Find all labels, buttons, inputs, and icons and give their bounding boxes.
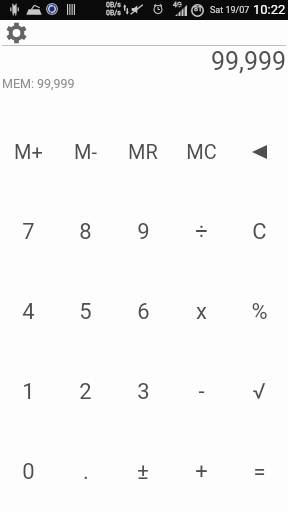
button[interactable]: 8 <box>57 192 114 272</box>
button[interactable]: ± <box>114 432 172 512</box>
staticText: - <box>198 379 205 405</box>
button[interactable]: 9 <box>114 192 172 272</box>
staticText: C <box>252 219 267 245</box>
button[interactable]: = <box>230 432 288 512</box>
button[interactable]: MR <box>114 111 172 192</box>
button[interactable]: √ <box>230 352 288 432</box>
button[interactable]: 6 <box>114 272 172 352</box>
staticText: MEM: 99,999 <box>2 76 75 91</box>
button[interactable]: 4 <box>0 272 57 352</box>
button[interactable]: - <box>172 352 230 432</box>
button[interactable]: % <box>230 272 288 352</box>
button[interactable]: ÷ <box>172 192 230 272</box>
staticText: 4 <box>22 299 35 325</box>
staticText: 7 <box>22 219 35 245</box>
staticText: 0 <box>22 459 35 485</box>
button[interactable]: x <box>172 272 230 352</box>
staticText: MR <box>128 140 158 163</box>
staticText: % <box>251 299 268 325</box>
staticText: 9 <box>137 219 150 245</box>
staticText: + <box>195 459 208 485</box>
button[interactable]: 7 <box>0 192 57 272</box>
staticText: 81 <box>194 5 202 13</box>
button[interactable]: MC <box>172 111 230 192</box>
staticText: 6 <box>137 299 150 325</box>
staticText: 3 <box>137 379 150 405</box>
button[interactable]: Backspace <box>230 111 288 192</box>
staticText: 10:22 <box>253 2 286 17</box>
button[interactable]: 1 <box>0 352 57 432</box>
staticText: 99,999 <box>211 47 287 76</box>
staticText: MC <box>186 140 217 163</box>
staticText: = <box>253 459 266 485</box>
button[interactable]: Settings <box>6 22 27 44</box>
staticText: M+ <box>14 140 43 163</box>
button[interactable]: M+ <box>0 111 57 192</box>
button[interactable]: C <box>230 192 288 272</box>
staticText: 2 <box>79 379 92 405</box>
button[interactable]: M- <box>57 111 114 192</box>
button[interactable]: . <box>57 432 114 512</box>
staticText: . <box>83 459 89 485</box>
staticText: 0B/s <box>106 9 121 17</box>
button[interactable]: 0 <box>0 432 57 512</box>
staticText: 5 <box>79 299 92 325</box>
staticText: √ <box>252 379 266 405</box>
staticText: 0B/s <box>106 1 121 9</box>
button[interactable]: 2 <box>57 352 114 432</box>
staticText: 8 <box>79 219 92 245</box>
staticText: 1 <box>22 379 35 405</box>
staticText: ± <box>137 459 149 485</box>
staticText: 4G <box>173 1 182 9</box>
button[interactable]: 5 <box>57 272 114 352</box>
staticText: x <box>196 299 207 325</box>
staticText: M- <box>74 140 97 163</box>
button[interactable]: 3 <box>114 352 172 432</box>
button[interactable]: + <box>172 432 230 512</box>
staticText: ÷ <box>195 219 208 245</box>
staticText: Sat 19/07 <box>210 5 250 16</box>
